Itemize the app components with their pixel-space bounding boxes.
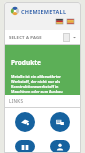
staticText: Metalle ist ein altbewährter Werkstoff, … (11, 74, 74, 95)
button[interactable]: VERSAND (10, 140, 40, 153)
button[interactable]: ANFRAGE (45, 112, 75, 137)
button[interactable]: Deutsch (56, 19, 63, 24)
staticText: Produkte (11, 58, 41, 67)
button[interactable]: Chemiemetall home (11, 7, 74, 15)
staticText: SELECT A PAGE (9, 35, 42, 41)
button[interactable]: Produkte (4, 45, 81, 95)
staticText: LINKS (9, 98, 24, 104)
button[interactable]: WEBSHOP (10, 112, 40, 137)
button[interactable]: SELECT A PAGE (4, 30, 81, 45)
staticText: CHEMIEMETALL (21, 8, 67, 15)
button[interactable]: KONTAKT (45, 140, 75, 153)
button[interactable]: Espanol (67, 19, 74, 24)
